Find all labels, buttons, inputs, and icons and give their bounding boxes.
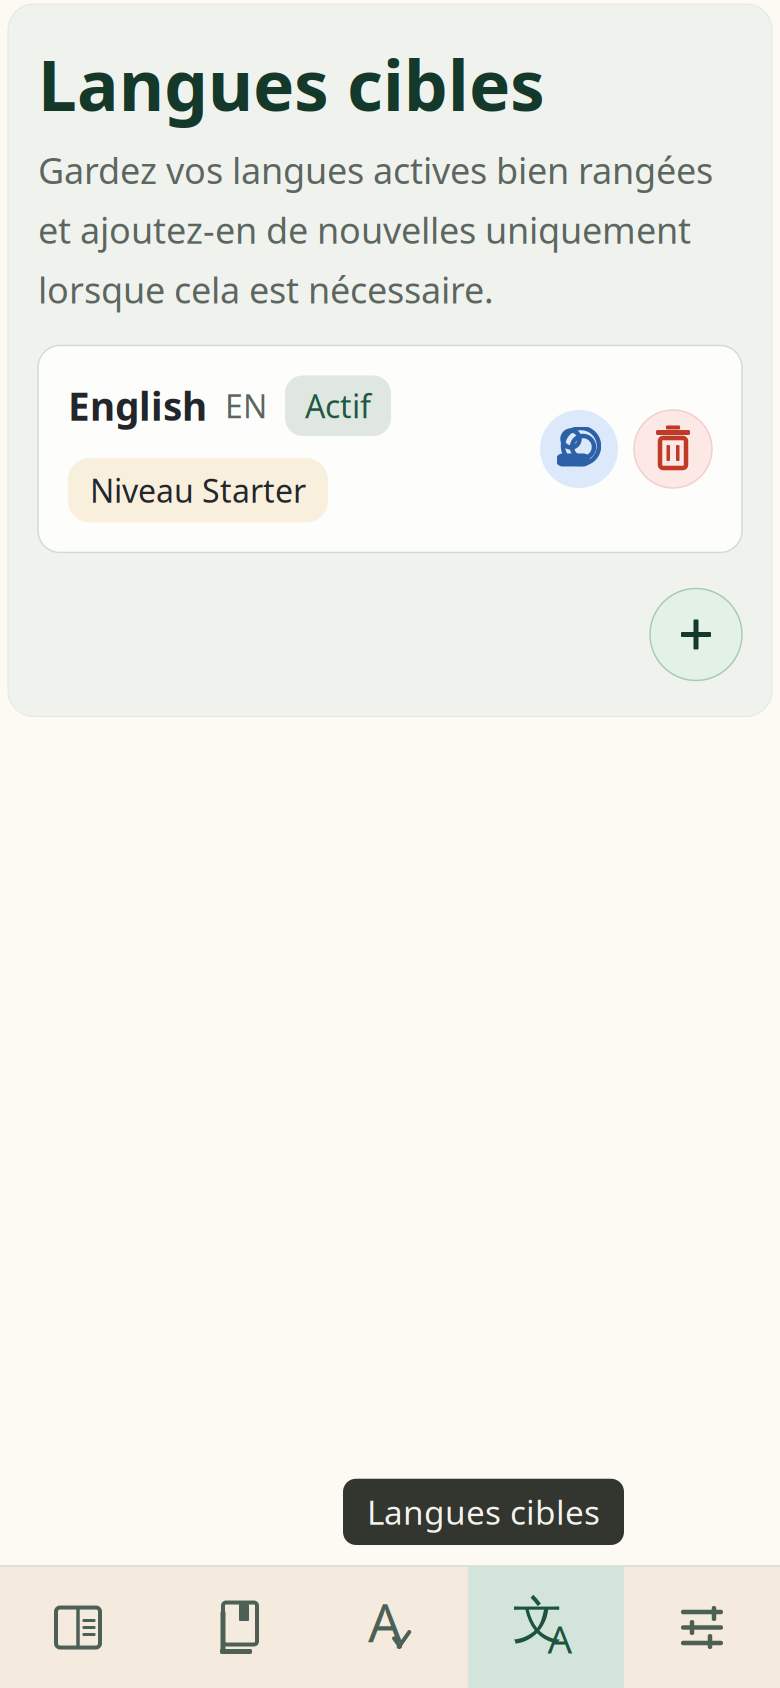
button[interactable]: Bibliothèque [156,1567,312,1688]
staticText: A [368,1586,402,1657]
button[interactable]: English [38,345,742,552]
staticText: Langues cibles [367,1490,600,1534]
staticText: A [547,1613,572,1664]
button[interactable]: Réglages [624,1567,780,1688]
staticText: Actif [305,384,371,427]
staticText: Gardez vos langues actives bien rangées … [38,146,713,313]
staticText: Niveau Starter [90,469,306,511]
button[interactable]: Supprimer [634,410,712,488]
staticText: English [68,380,207,431]
button[interactable]: Écouter la prononciation [540,410,618,488]
button[interactable]: Vocabulaire [312,1567,468,1688]
button[interactable]: Lecture [0,1567,156,1688]
staticText: Langues cibles [38,38,545,130]
staticText: EN [225,384,267,427]
button[interactable]: Ajouter une langue [650,588,742,680]
staticText: 文 [512,1589,563,1652]
button[interactable]: Langues cibles [468,1567,624,1688]
